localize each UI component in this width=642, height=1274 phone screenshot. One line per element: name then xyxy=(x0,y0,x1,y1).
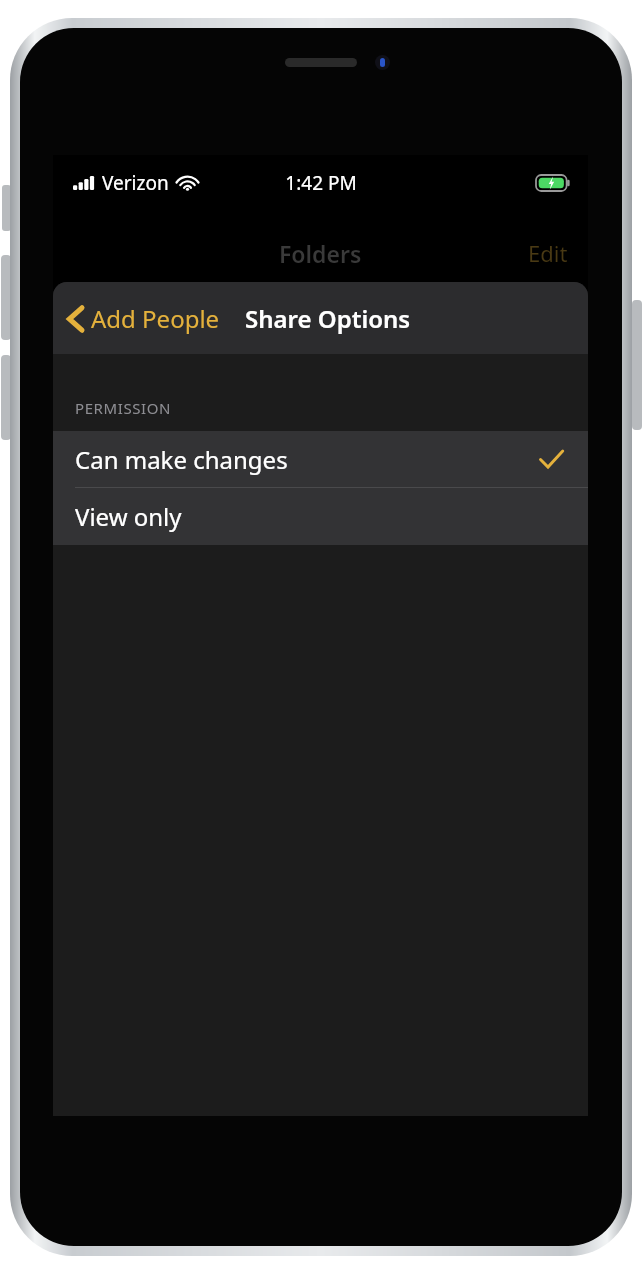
staticText: Folders xyxy=(279,238,362,269)
staticText: PERMISSION xyxy=(75,398,172,418)
button[interactable]: View only xyxy=(53,488,588,545)
staticText: Verizon xyxy=(102,170,169,196)
staticText: Share Options xyxy=(245,302,411,335)
staticText: 1:42 PM xyxy=(285,170,357,196)
staticText: Add People xyxy=(91,302,220,335)
staticText: Can make changes xyxy=(75,443,288,476)
other: Selected xyxy=(539,449,564,470)
button[interactable]: Add People xyxy=(53,294,230,343)
staticText: Edit xyxy=(528,238,568,268)
staticText: View only xyxy=(75,500,182,533)
button[interactable]: Can make changes xyxy=(53,431,588,488)
